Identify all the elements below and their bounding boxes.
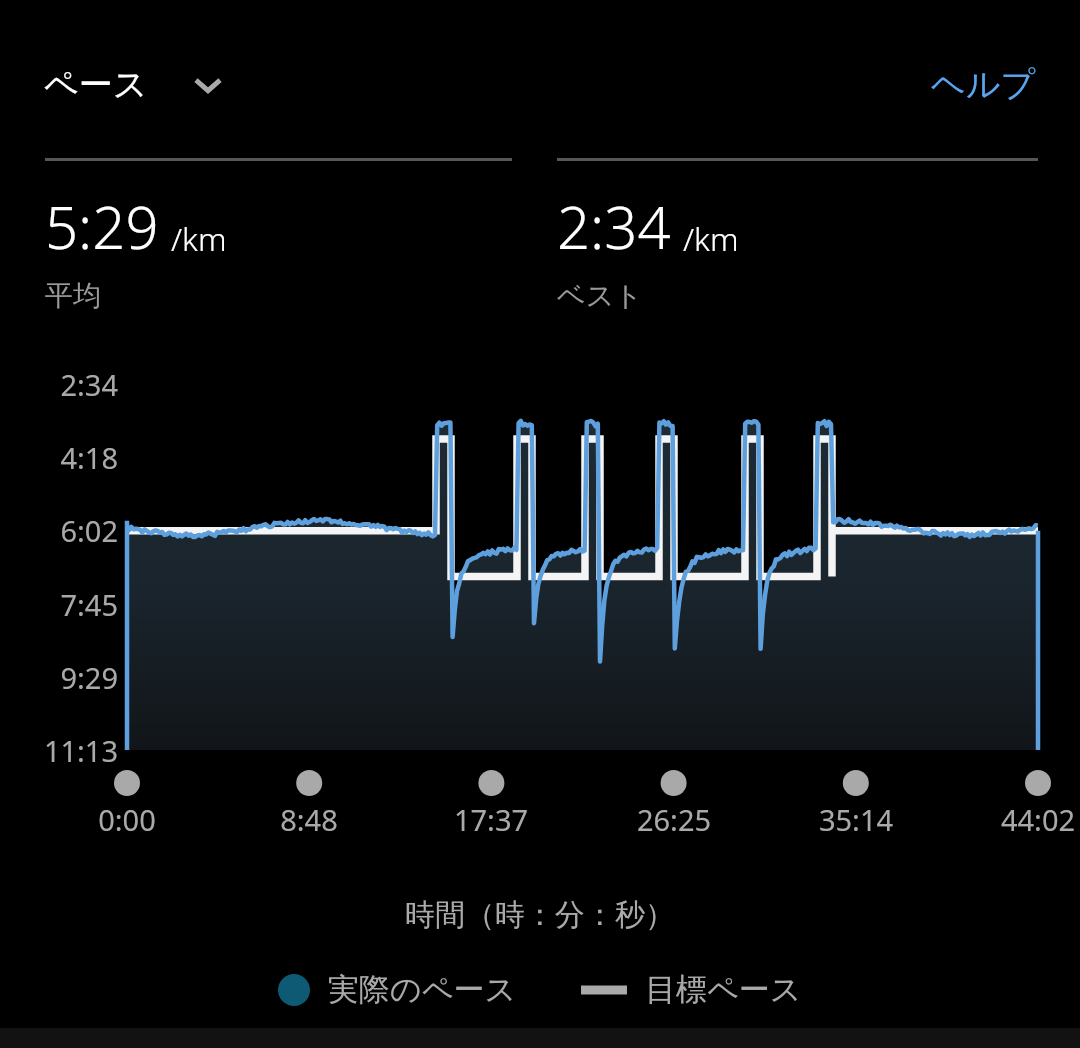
staticText: 17:37 bbox=[421, 800, 561, 839]
button[interactable]: ペース bbox=[22, 55, 250, 114]
staticText: 44:02 bbox=[968, 800, 1080, 839]
staticText: 時間（時：分：秒） bbox=[0, 896, 1080, 934]
staticText: 実際のペース bbox=[328, 970, 517, 1009]
button[interactable]: 実際のペース bbox=[272, 964, 523, 1015]
staticText: 8:48 bbox=[239, 800, 379, 839]
button[interactable]: 目標ペース bbox=[575, 964, 808, 1015]
staticText: 5:29 bbox=[45, 187, 159, 266]
staticText: 9:29 bbox=[0, 658, 118, 697]
staticText: 平均 bbox=[45, 278, 101, 313]
staticText: /km bbox=[171, 217, 227, 261]
other: Change metric bbox=[188, 65, 228, 105]
staticText: ペース bbox=[44, 63, 148, 106]
staticText: 26:25 bbox=[604, 800, 744, 839]
staticText: ヘルプ bbox=[931, 63, 1036, 106]
staticText: 0:00 bbox=[57, 800, 197, 839]
staticText: 4:18 bbox=[0, 438, 118, 477]
staticText: 35:14 bbox=[786, 800, 926, 839]
staticText: 11:13 bbox=[0, 731, 118, 770]
staticText: 2:34 bbox=[0, 365, 118, 404]
staticText: ベスト bbox=[557, 278, 643, 313]
staticText: /km bbox=[683, 217, 739, 261]
staticText: 2:34 bbox=[557, 187, 671, 266]
staticText: 目標ペース bbox=[645, 970, 802, 1009]
button[interactable]: ヘルプ bbox=[909, 53, 1058, 116]
staticText: 6:02 bbox=[0, 511, 118, 550]
staticText: 7:45 bbox=[0, 585, 118, 624]
